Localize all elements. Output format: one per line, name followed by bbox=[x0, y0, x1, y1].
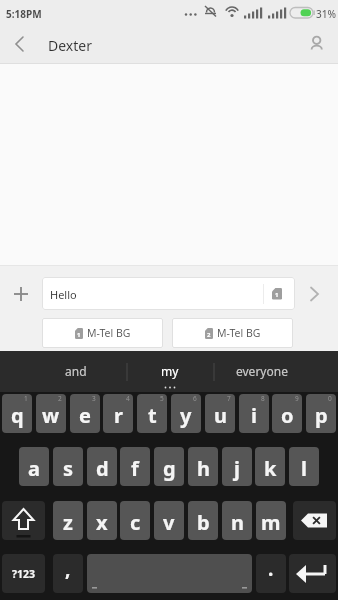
staticText: , bbox=[65, 556, 71, 582]
staticText: M-Tel BG bbox=[217, 326, 261, 340]
staticText: d bbox=[96, 455, 109, 482]
staticText: 4 bbox=[126, 394, 130, 403]
staticText: 2 bbox=[58, 394, 62, 403]
staticText: 7 bbox=[227, 394, 231, 403]
staticText: u bbox=[214, 402, 227, 429]
staticText: r bbox=[114, 402, 123, 429]
staticText: 2 bbox=[207, 331, 211, 339]
staticText: 9 bbox=[295, 394, 299, 403]
staticText: s bbox=[63, 455, 74, 482]
staticText: 3 bbox=[92, 394, 96, 403]
staticText: 31% bbox=[316, 7, 336, 21]
staticText: 1 bbox=[275, 291, 279, 299]
staticText: n bbox=[231, 509, 244, 536]
staticText: p bbox=[315, 402, 328, 429]
staticText: w bbox=[42, 402, 60, 429]
staticText: o bbox=[281, 402, 294, 429]
staticText: j bbox=[234, 455, 240, 482]
staticText: . bbox=[268, 556, 274, 582]
staticText: f bbox=[131, 455, 139, 482]
staticText: q bbox=[11, 402, 24, 429]
staticText: 5 bbox=[160, 394, 164, 403]
staticText: ?123 bbox=[12, 567, 36, 581]
staticText: l bbox=[301, 455, 307, 482]
staticText: and bbox=[65, 363, 87, 379]
staticText: my bbox=[161, 363, 179, 379]
staticText: Hello bbox=[50, 287, 77, 302]
staticText: a bbox=[28, 455, 40, 482]
staticText: i bbox=[251, 402, 257, 429]
staticText: everyone bbox=[236, 363, 288, 379]
staticText: 1 bbox=[77, 331, 81, 339]
staticText: m bbox=[261, 509, 281, 536]
staticText: 1 bbox=[24, 394, 28, 403]
staticText: M-Tel BG bbox=[87, 326, 131, 340]
staticText: x bbox=[96, 509, 108, 536]
staticText: b bbox=[197, 509, 210, 536]
staticText: v bbox=[163, 509, 175, 536]
staticText: 5:18PM bbox=[6, 7, 42, 21]
staticText: 8 bbox=[261, 394, 265, 403]
staticText: 6 bbox=[193, 394, 197, 403]
staticText: h bbox=[197, 455, 210, 482]
staticText: c bbox=[130, 509, 141, 536]
staticText: e bbox=[79, 402, 91, 429]
staticText: 0 bbox=[328, 394, 332, 403]
staticText: y bbox=[180, 402, 192, 429]
staticText: Dexter bbox=[48, 36, 92, 55]
staticText: k bbox=[264, 455, 277, 482]
staticText: z bbox=[63, 509, 73, 536]
staticText: t bbox=[148, 402, 157, 429]
staticText: g bbox=[163, 455, 176, 482]
